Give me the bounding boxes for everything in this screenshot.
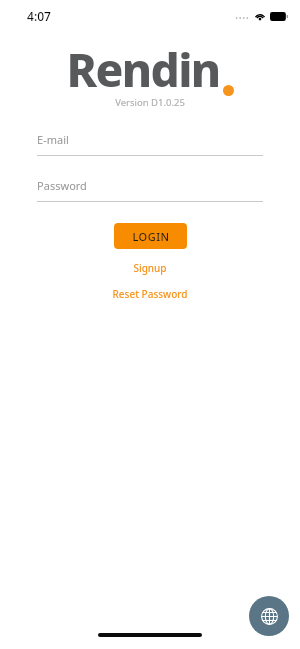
staticText: LOGIN — [132, 229, 170, 244]
staticText: Password — [37, 178, 87, 193]
button[interactable]: Signup — [121, 259, 179, 277]
staticText: Reset Password — [112, 287, 188, 301]
button[interactable]: Change language — [249, 596, 289, 636]
button[interactable]: E-mail — [37, 128, 263, 156]
button[interactable]: Reset Password — [100, 285, 200, 303]
staticText: 4:07 — [27, 8, 51, 24]
staticText: Rendin — [66, 38, 220, 101]
staticText: Signup — [133, 261, 167, 275]
button[interactable]: Password — [37, 174, 263, 202]
button[interactable]: LOGIN — [114, 223, 187, 249]
staticText: Version D1.0.25 — [115, 96, 185, 109]
staticText: E-mail — [37, 132, 69, 147]
